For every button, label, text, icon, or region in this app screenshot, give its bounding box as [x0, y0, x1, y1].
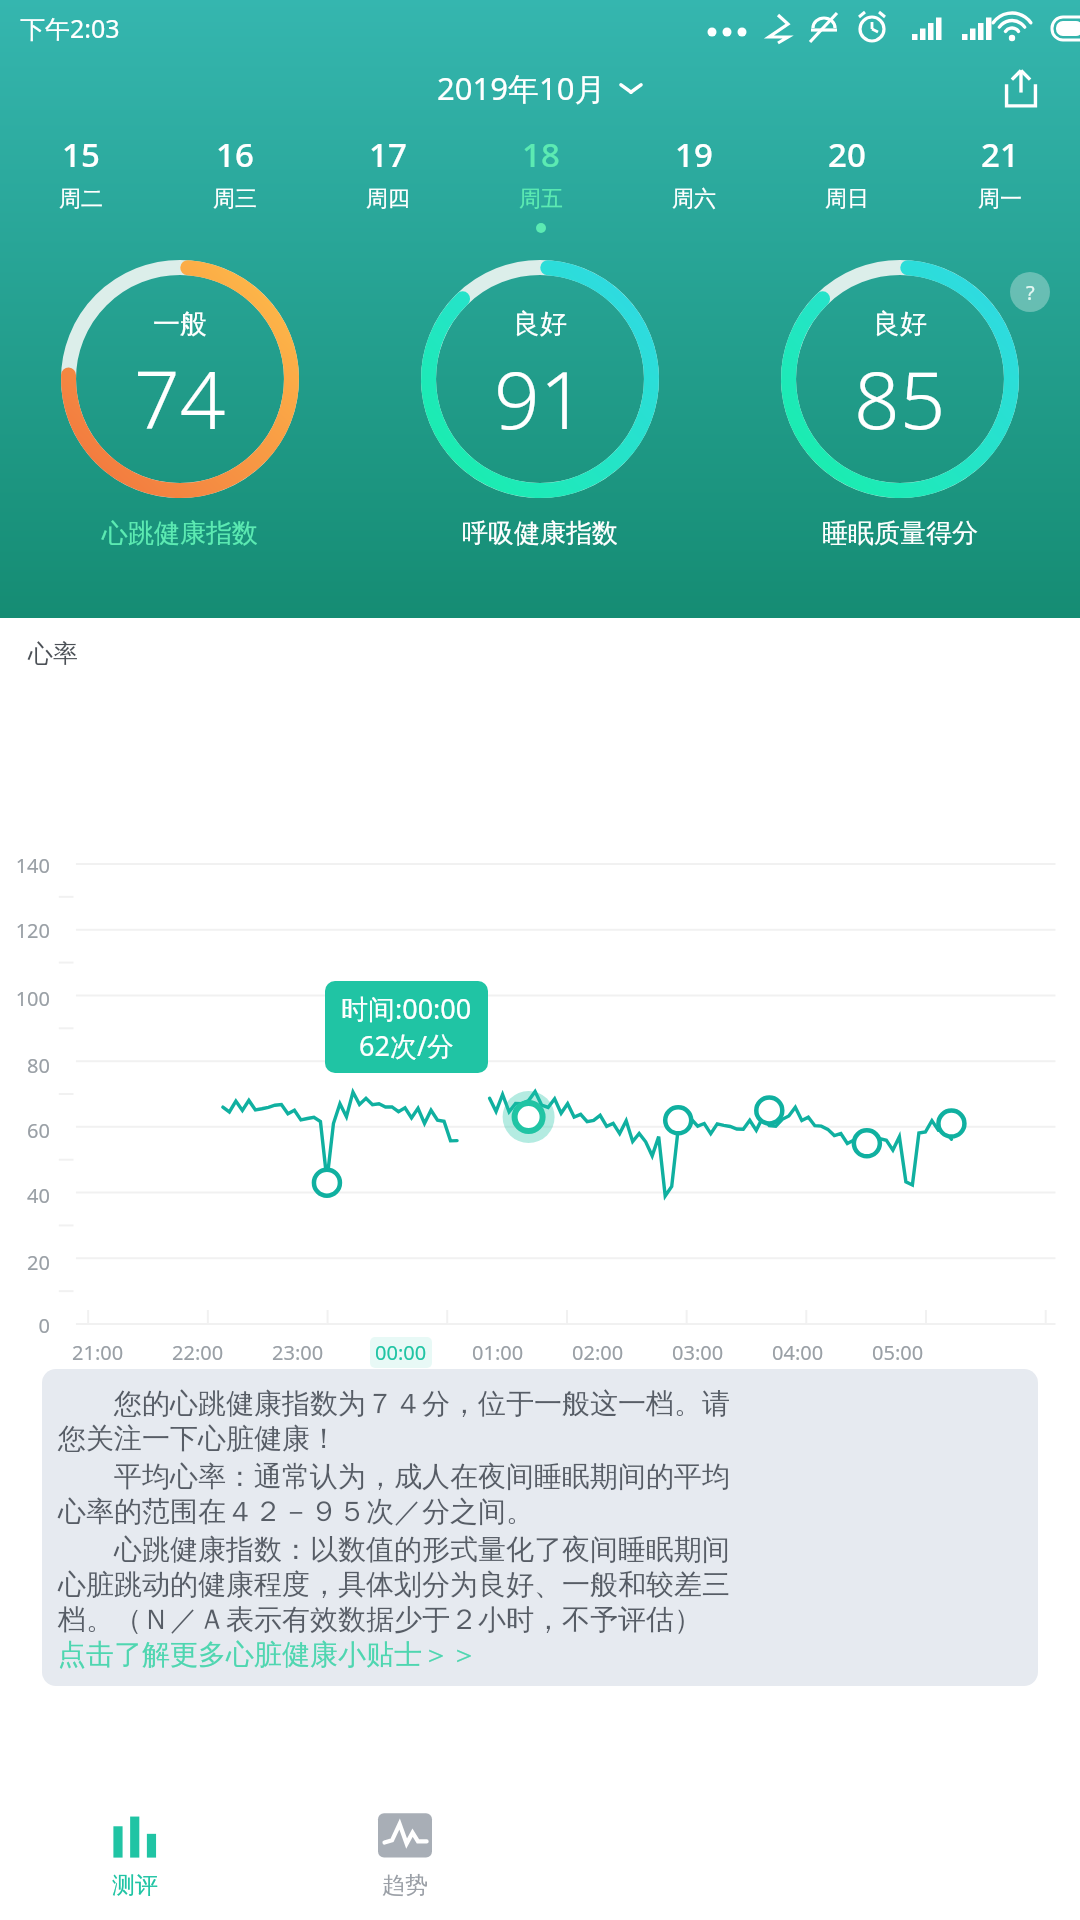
button[interactable]: 17 [311, 132, 464, 233]
staticText: 19 [675, 132, 713, 177]
button[interactable]: 21 [923, 132, 1076, 233]
staticText: 05:00 [872, 1339, 924, 1366]
staticText: 良好 [873, 307, 927, 341]
staticText: 02:00 [572, 1339, 624, 1366]
button[interactable]: 测评 [0, 1788, 270, 1920]
staticText: 心率 [28, 638, 78, 669]
button[interactable]: 良好 [720, 257, 1080, 550]
staticText: 62次/分 [359, 1027, 454, 1064]
button[interactable]: 2019年10月 [437, 67, 644, 109]
staticText: 60 [2, 1117, 50, 1144]
staticText: 您关注一下心脏健康！ [58, 1421, 338, 1456]
staticText: 良好 [513, 307, 567, 341]
staticText: ? [1026, 279, 1035, 306]
staticText: 15 [62, 132, 100, 177]
button[interactable]: 18 [464, 132, 617, 233]
staticText: 74 [134, 343, 226, 452]
staticText: 21 [981, 132, 1019, 177]
staticText: 22:00 [172, 1339, 224, 1366]
button[interactable]: Help [1006, 268, 1054, 316]
staticText: 一般 [153, 307, 207, 341]
staticText: 0 [2, 1312, 50, 1339]
staticText: 18 [522, 132, 560, 177]
staticText: 00:00 [375, 1339, 427, 1366]
staticText: 120 [2, 917, 50, 944]
button[interactable]: 一般 [0, 257, 360, 550]
button[interactable]: 良好 [360, 257, 720, 550]
button[interactable]: 趋势 [270, 1788, 540, 1920]
button[interactable]: 15 [4, 132, 158, 233]
staticText: 心脏跳动的健康程度，具体划分为良好、一般和较差三 [58, 1567, 730, 1602]
button[interactable]: 16 [158, 132, 311, 233]
staticText: 点击了解更多心脏健康小贴士＞＞ [58, 1637, 478, 1672]
staticText: 平均心率：通常认为，成人在夜间睡眠期间的平均 [58, 1456, 730, 1494]
staticText: 心率的范围在４２－９５次／分之间。 [58, 1494, 534, 1529]
staticText: 周六 [672, 185, 716, 213]
staticText: 下午2:03 [20, 11, 120, 45]
staticText: 周一 [978, 185, 1022, 213]
staticText: 周二 [59, 185, 103, 213]
staticText: 档。（Ｎ／Ａ表示有效数据少于２小时，不予评估） [58, 1602, 702, 1637]
staticText: 17 [369, 132, 407, 177]
staticText: 04:00 [772, 1339, 824, 1366]
staticText: 21:00 [72, 1339, 124, 1366]
staticText: 周四 [366, 185, 410, 213]
staticText: 心跳健康指数 [102, 517, 258, 550]
staticText: 85 [854, 343, 946, 452]
staticText: 20 [2, 1249, 50, 1276]
staticText: 16 [216, 132, 254, 177]
staticText: 03:00 [672, 1339, 724, 1366]
staticText: 心跳健康指数：以数值的形式量化了夜间睡眠期间 [58, 1529, 730, 1567]
staticText: 01:00 [472, 1339, 524, 1366]
button[interactable]: Share [994, 61, 1048, 115]
button[interactable]: 20 [770, 132, 923, 233]
staticText: 周三 [213, 185, 257, 213]
staticText: 呼吸健康指数 [462, 517, 618, 550]
staticText: 80 [2, 1052, 50, 1079]
staticText: 91 [494, 343, 586, 452]
staticText: 睡眠质量得分 [822, 517, 978, 550]
staticText: 测评 [112, 1871, 158, 1900]
staticText: 23:00 [272, 1339, 324, 1366]
button[interactable]: 19 [617, 132, 770, 233]
staticText: 140 [2, 852, 50, 879]
staticText: 20 [828, 132, 866, 177]
staticText: 2019年10月 [437, 67, 606, 109]
staticText: 您的心跳健康指数为７４分，位于一般这一档。请 [58, 1383, 730, 1421]
staticText: 周五 [519, 185, 563, 213]
staticText: 时间:00:00 [341, 990, 472, 1027]
button[interactable]: 点击了解更多心脏健康小贴士＞＞ [58, 1637, 478, 1672]
staticText: 周日 [825, 185, 869, 213]
staticText: 40 [2, 1182, 50, 1209]
staticText: 趋势 [382, 1871, 428, 1900]
staticText: 100 [2, 985, 50, 1012]
